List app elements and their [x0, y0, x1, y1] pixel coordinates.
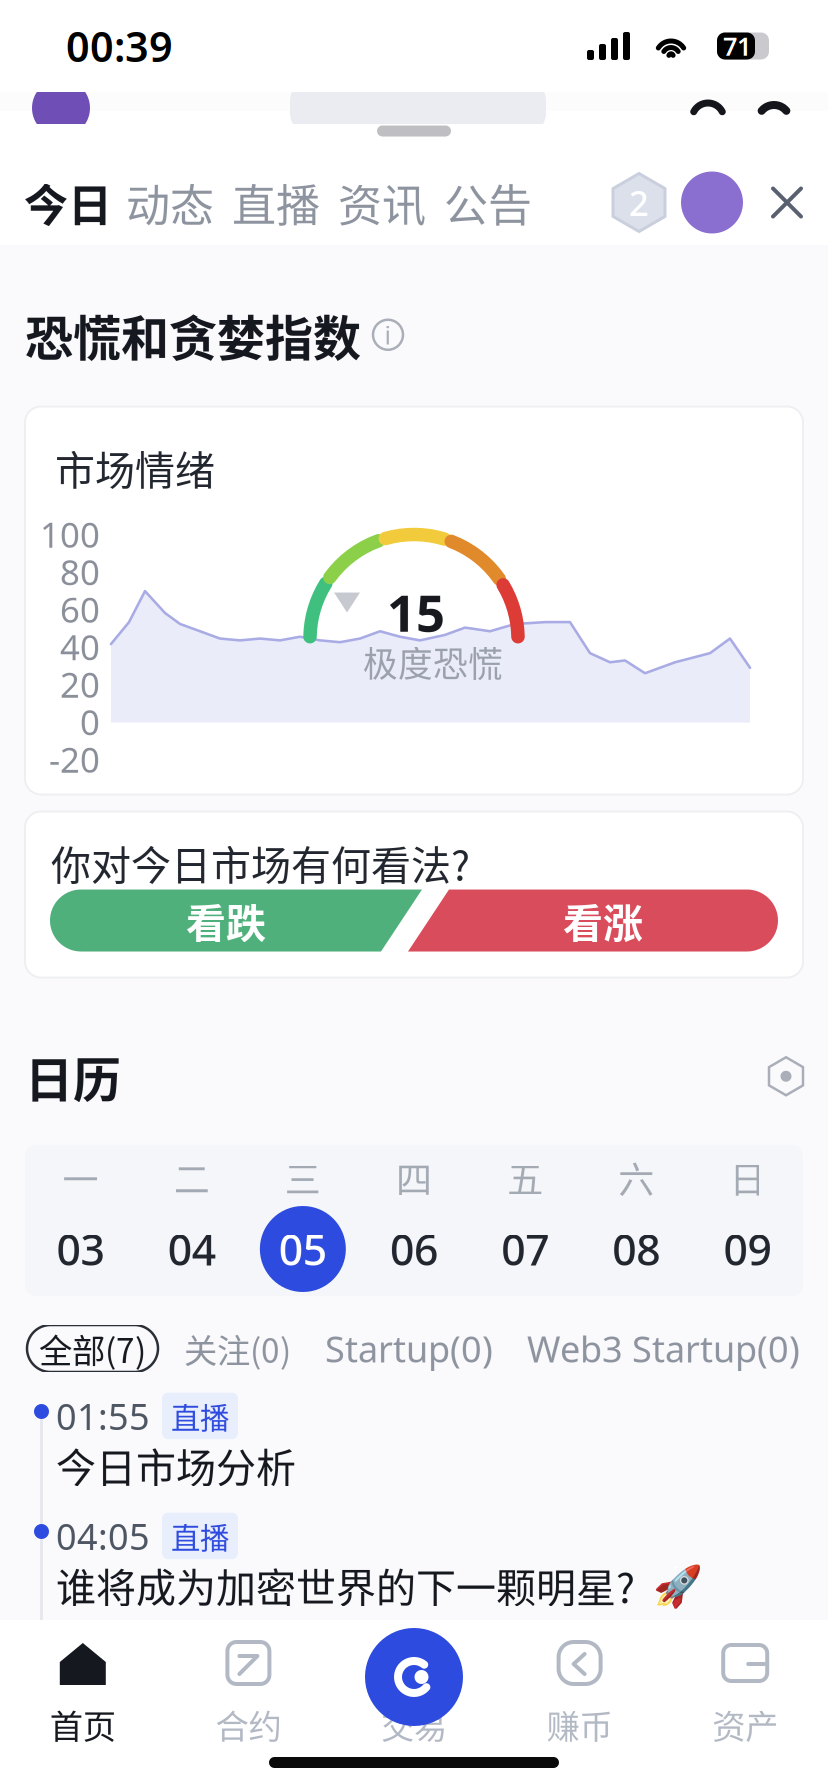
staticText: 09: [723, 1221, 771, 1277]
staticText: 80: [60, 549, 100, 595]
button[interactable]: 六: [581, 1149, 692, 1292]
staticText: 今日市场分析: [56, 1436, 296, 1494]
staticText: 2: [629, 179, 649, 225]
button[interactable]: Profile: [681, 171, 743, 233]
staticText: 日历: [25, 1041, 121, 1111]
staticText: 直播: [232, 171, 320, 234]
staticText: 谁将成为加密世界的下一颗明星? 🚀: [56, 1556, 703, 1614]
staticText: 03: [57, 1221, 105, 1277]
button[interactable]: 赚币: [497, 1638, 662, 1748]
button[interactable]: Trade: [365, 1628, 463, 1726]
button[interactable]: 公告: [444, 171, 532, 234]
staticText: 赚币: [547, 1700, 613, 1748]
button[interactable]: 二: [136, 1149, 247, 1292]
staticText: 71: [723, 29, 751, 63]
button[interactable]: 关注(0): [184, 1324, 291, 1373]
staticText: 日: [729, 1151, 765, 1203]
staticText: 07: [501, 1221, 549, 1277]
staticText: 一: [63, 1151, 99, 1203]
button[interactable]: 看跌: [50, 889, 422, 951]
staticText: Web3 Startup(0): [527, 1325, 800, 1372]
staticText: 直播: [171, 1515, 229, 1557]
staticText: 100: [40, 511, 100, 557]
button[interactable]: 04:05: [0, 1506, 828, 1626]
button[interactable]: Level 2: [613, 173, 665, 231]
staticText: 你对今日市场有何看法?: [51, 833, 470, 891]
staticText: 四: [396, 1151, 432, 1203]
button[interactable]: 交易: [331, 1638, 497, 1748]
staticText: 五: [507, 1151, 543, 1203]
button[interactable]: Startup(0): [325, 1325, 493, 1372]
staticText: 合约: [215, 1700, 281, 1748]
button[interactable]: 直播: [232, 171, 320, 234]
staticText: 今日: [24, 171, 112, 234]
button[interactable]: Web3 Startup(0): [527, 1325, 800, 1372]
button[interactable]: 01:55: [0, 1386, 828, 1506]
staticText: 三: [285, 1151, 321, 1203]
staticText: 恐慌和贪婪指数: [25, 300, 361, 369]
staticText: 05: [279, 1221, 327, 1277]
staticText: i: [384, 318, 391, 351]
staticText: 看跌: [186, 891, 266, 949]
staticText: 关注(0): [184, 1324, 291, 1373]
button[interactable]: Close: [770, 185, 804, 219]
button[interactable]: 动态: [126, 171, 214, 234]
staticText: 0: [80, 699, 100, 745]
staticText: 首页: [50, 1700, 116, 1748]
button[interactable]: 一: [25, 1149, 136, 1292]
staticText: Startup(0): [325, 1325, 493, 1372]
staticText: 20: [60, 661, 100, 707]
button[interactable]: 今日: [24, 171, 112, 234]
staticText: 极度恐慌: [363, 636, 503, 687]
button[interactable]: 看涨: [408, 889, 778, 951]
staticText: 看涨: [563, 891, 643, 949]
button[interactable]: 五: [470, 1149, 581, 1292]
button[interactable]: 资讯: [338, 171, 426, 234]
staticText: 公告: [444, 171, 532, 234]
staticText: 08: [612, 1221, 660, 1277]
staticText: 06: [390, 1221, 438, 1277]
button[interactable]: 四: [358, 1149, 469, 1292]
button[interactable]: 合约: [166, 1638, 331, 1748]
staticText: 六: [618, 1151, 654, 1203]
staticText: 直播: [171, 1395, 229, 1437]
staticText: 市场情绪: [55, 438, 215, 496]
button[interactable]: 全部(7): [27, 1325, 158, 1372]
staticText: 00:39: [66, 19, 173, 73]
button[interactable]: Calendar settings: [769, 1057, 803, 1095]
button[interactable]: 三: [247, 1149, 358, 1292]
staticText: 60: [60, 586, 100, 632]
staticText: 资产: [712, 1700, 778, 1748]
staticText: 交易: [381, 1700, 447, 1748]
staticText: 04:05: [56, 1512, 150, 1560]
staticText: 动态: [126, 171, 214, 234]
staticText: 全部(7): [39, 1324, 146, 1373]
button[interactable]: 资产: [662, 1638, 828, 1748]
button[interactable]: 首页: [0, 1638, 166, 1748]
staticText: -20: [49, 736, 100, 782]
staticText: 资讯: [338, 171, 426, 234]
staticText: 04: [168, 1221, 216, 1277]
staticText: 二: [174, 1151, 210, 1203]
staticText: 01:55: [56, 1392, 150, 1440]
staticText: 40: [60, 624, 100, 670]
staticText: 15: [387, 578, 445, 646]
button[interactable]: 日: [692, 1149, 803, 1292]
